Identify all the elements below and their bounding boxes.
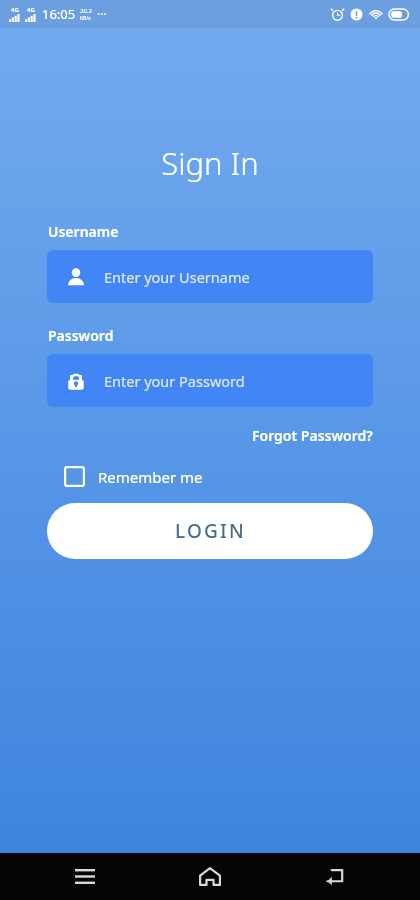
staticText: 4G (11, 6, 19, 14)
staticText: Password (48, 326, 114, 345)
staticText: 16:05 (42, 5, 76, 23)
button[interactable]: Home (186, 853, 234, 900)
button[interactable]: LOGIN (47, 503, 373, 559)
button[interactable]: Forgot Password? (250, 423, 375, 448)
staticText: 4G (27, 6, 35, 14)
button[interactable]: Enter your Username (47, 250, 373, 303)
staticText: KB/s (80, 15, 91, 22)
staticText: Sign In (0, 142, 420, 184)
staticText: Enter your Password (104, 371, 245, 391)
staticText: 20.2 (80, 7, 92, 15)
button[interactable]: Enter your Password (47, 354, 373, 407)
staticText: Username (48, 222, 119, 241)
staticText: LOGIN (175, 518, 246, 544)
staticText: Forgot Password? (252, 426, 373, 445)
staticText: ··· (97, 6, 107, 22)
button[interactable]: Menu (61, 853, 109, 900)
staticText: Enter your Username (104, 267, 250, 287)
staticText: Remember me (98, 467, 203, 487)
button[interactable]: Back (311, 853, 359, 900)
button[interactable]: Remember me (60, 462, 207, 491)
